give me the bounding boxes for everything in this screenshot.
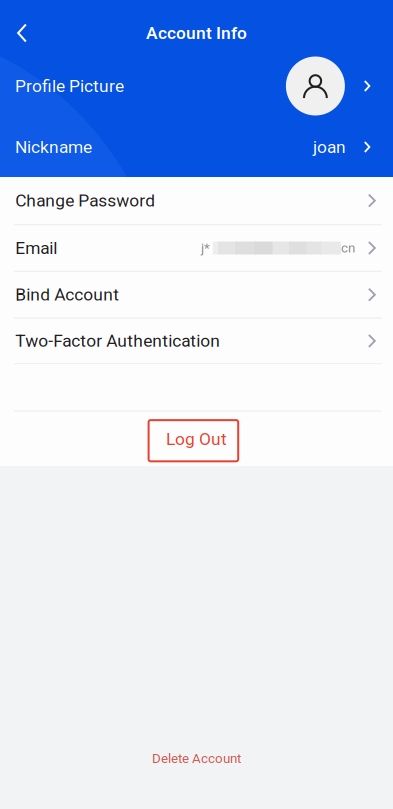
staticText: cn <box>341 240 355 256</box>
button[interactable]: Delete Account <box>0 741 393 775</box>
button[interactable]: Email <box>0 225 393 271</box>
staticText: Email <box>15 238 57 258</box>
button[interactable]: Profile Picture <box>0 55 393 117</box>
staticText: Account Info <box>146 23 247 43</box>
staticText: j* <box>201 240 210 256</box>
button[interactable]: Two-Factor Authentication <box>0 319 393 363</box>
staticText: Profile Picture <box>15 76 124 96</box>
button[interactable]: Back <box>0 11 44 55</box>
staticText: joan <box>313 137 346 157</box>
button[interactable]: Log Out <box>0 419 393 462</box>
staticText: Bind Account <box>15 284 119 305</box>
staticText: Delete Account <box>152 751 241 766</box>
button[interactable]: Nickname <box>0 117 393 177</box>
button[interactable]: Change Password <box>0 177 393 224</box>
button[interactable]: Bind Account <box>0 272 393 318</box>
staticText: Change Password <box>15 190 155 211</box>
staticText: Two-Factor Authentication <box>15 331 220 351</box>
staticText: Log Out <box>166 429 227 449</box>
staticText: Nickname <box>15 137 92 157</box>
